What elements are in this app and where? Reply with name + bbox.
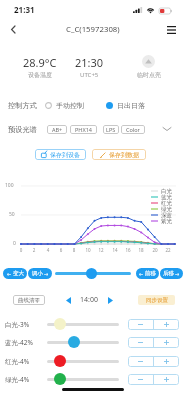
staticText: 设备温度 [28,71,52,79]
staticText: AB+ [52,126,63,133]
staticText: PHX14 [75,126,92,133]
staticText: 28.9°C [23,55,57,70]
staticText: 14 [110,247,120,253]
staticText: 12 [96,247,106,253]
staticText: 后移 [163,270,174,277]
staticText: 手动控制 [56,101,84,110]
staticText: 50 [9,211,15,218]
button[interactable]: 绿光-4% [54,373,66,385]
staticText: 保存到数据 [109,151,139,159]
button[interactable]: 蓝光-42% [68,336,80,348]
staticText: ← [7,271,12,277]
staticText: 0 [16,247,26,253]
button[interactable]: Increase 绿光-4% [154,374,179,385]
staticText: 曲线清零 [18,297,40,304]
staticText: 紫光 [161,218,182,224]
staticText: LPS [106,126,116,133]
staticText: 16 [123,247,133,253]
staticText: 变大 [13,270,24,277]
button[interactable]: 保存到数据 [92,149,146,160]
button[interactable]: Decrease 红光-4% [128,356,153,367]
staticText: 18 [136,247,146,253]
staticText: C_C(15972308) [66,24,120,35]
staticText: 控制方式 [8,101,37,110]
staticText: ← [139,271,144,277]
button[interactable]: 白光-3% [54,318,66,330]
staticText: 8 [69,247,79,253]
staticText: 白光-3% [5,320,30,329]
button[interactable]: Increase 红光-4% [154,356,179,367]
button[interactable]: 后移 [160,268,183,279]
button[interactable]: 红光-4% [54,355,66,367]
staticText: 保存到设备 [50,151,80,159]
button[interactable]: ← [3,268,27,279]
staticText: 6 [56,247,66,253]
staticText: 蓝光 [161,194,182,200]
staticText: 白光 [161,188,182,194]
button[interactable]: Decrease 绿光-4% [128,374,153,385]
staticText: 0 [13,240,16,247]
staticText: 绿光-4% [5,375,30,384]
staticText: 10 [83,247,93,253]
button[interactable]: Menu [161,19,182,40]
staticText: 预设光谱 [8,125,37,134]
staticText: 100 [5,182,14,189]
button[interactable]: Next time [104,294,116,306]
button[interactable]: 临时点亮 [124,55,173,79]
staticText: 前移 [145,270,156,277]
staticText: → [44,271,49,277]
staticText: 红光 [161,200,182,206]
staticText: Color [126,126,140,133]
button[interactable]: Expand presets [161,123,173,135]
staticText: 调小 [32,270,43,277]
staticText: UTC+5 [80,71,99,79]
staticText: 同步设置 [146,297,168,304]
button[interactable]: Time slider [86,268,97,279]
staticText: 21:31 [14,4,35,15]
button[interactable]: 同步设置 [138,295,175,305]
button[interactable]: PHX14 [70,125,97,134]
staticText: 绿光 [161,206,182,212]
button[interactable]: AB+ [47,125,67,134]
button[interactable]: 日出日落 [106,101,145,110]
staticText: → [175,271,180,277]
staticText: 红光-4% [5,357,30,366]
button[interactable]: 保存到设备 [35,149,86,160]
staticText: 14:00 [80,295,98,305]
button[interactable]: LPS [103,125,119,134]
staticText: 21:30 [75,55,104,70]
staticText: 临时点亮 [137,71,161,79]
button[interactable]: ← [136,268,159,279]
button[interactable]: Back [2,19,23,40]
button[interactable]: Increase 白光-3% [154,319,179,330]
button[interactable]: 手动控制 [45,101,84,110]
staticText: 4 [43,247,53,253]
button[interactable]: Decrease 蓝光-42% [128,337,153,348]
staticText: 日出日落 [117,101,145,110]
staticText: 蓝光-42% [5,338,33,347]
button[interactable]: Color [121,125,145,134]
staticText: 深蓝 [161,212,182,218]
button[interactable]: 调小 [28,268,52,279]
button[interactable]: Previous time [62,294,74,306]
button[interactable]: 曲线清零 [13,295,45,305]
staticText: 20 [150,247,160,253]
staticText: 22 [163,247,173,253]
button[interactable]: Increase 蓝光-42% [154,337,179,348]
button[interactable]: Decrease 白光-3% [128,319,153,330]
staticText: 2 [29,247,39,253]
